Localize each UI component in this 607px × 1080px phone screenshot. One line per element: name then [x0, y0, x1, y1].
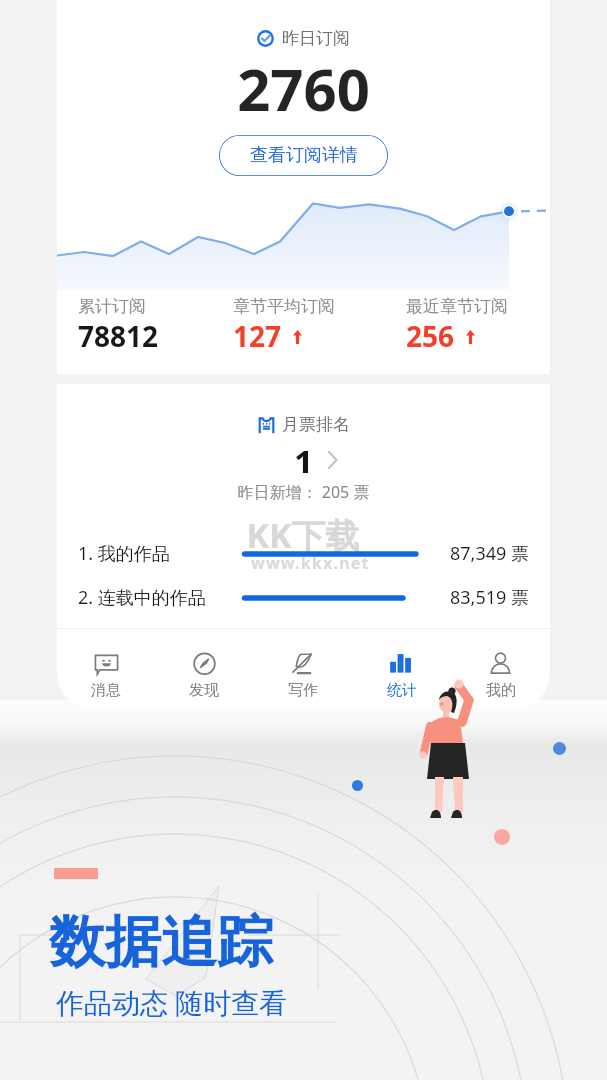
staticText: 78812 — [78, 317, 159, 355]
staticText: 查看订阅详情 — [250, 144, 358, 167]
button[interactable]: Write — [253, 645, 352, 706]
staticText: 数据追踪 — [49, 907, 273, 978]
button[interactable]: Profile — [451, 645, 550, 706]
button[interactable]: 2. 连载中的作品 — [78, 584, 529, 611]
staticText: 累计订阅 — [78, 296, 146, 317]
staticText: 1. 我的作品 — [78, 541, 170, 566]
staticText: 写作 — [288, 681, 318, 700]
staticText: 消息 — [91, 681, 121, 700]
staticText: 章节平均订阅 — [233, 296, 335, 317]
staticText: KK下载 — [246, 512, 360, 558]
staticText: 2. 连载中的作品 — [78, 585, 206, 610]
button[interactable]: Discover — [155, 645, 253, 706]
staticText: 月票排名 — [282, 414, 350, 435]
staticText: 统计 — [387, 681, 417, 700]
button[interactable]: Messages — [57, 645, 155, 706]
staticText: 最近章节订阅 — [406, 296, 508, 317]
staticText: 我的 — [486, 681, 516, 700]
staticText: 发现 — [189, 681, 219, 700]
staticText: 87,349 票 — [450, 541, 529, 566]
button[interactable]: 查看订阅详情 — [219, 135, 388, 176]
button[interactable]: Statistics — [352, 645, 451, 706]
staticText: 昨日新增： 205 票 — [57, 481, 550, 503]
staticText: 昨日订阅 — [282, 28, 350, 49]
staticText: 1 — [294, 439, 314, 473]
staticText: 256 — [406, 317, 455, 355]
button[interactable]: 1 — [57, 443, 550, 477]
staticText: 83,519 票 — [450, 585, 529, 610]
staticText: 作品动态 随时查看 — [56, 983, 288, 1021]
staticText: www.kkx.net — [251, 552, 370, 574]
staticText: 2760 — [57, 49, 550, 128]
staticText: 127 — [233, 317, 282, 355]
button[interactable]: 1. 我的作品 — [78, 540, 529, 567]
